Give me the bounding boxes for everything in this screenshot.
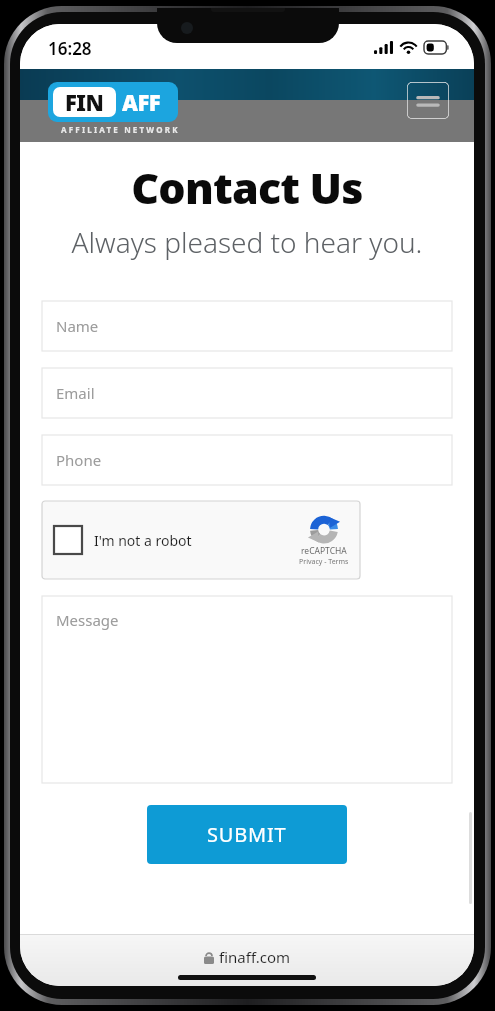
staticText: reCAPTCHA: [301, 545, 347, 557]
staticText: finaff.com: [219, 947, 291, 967]
button[interactable]: Message: [42, 596, 452, 783]
staticText: I'm not a robot: [94, 531, 192, 550]
staticText: Always pleased to hear you.: [44, 223, 450, 261]
staticText: Email: [56, 383, 95, 403]
staticText: Message: [56, 610, 119, 630]
button[interactable]: I'm not a robot checkbox: [54, 526, 82, 554]
button[interactable]: Email: [42, 368, 452, 418]
staticText: 16:28: [48, 37, 92, 60]
staticText: Phone: [56, 450, 102, 470]
staticText: SUBMIT: [207, 821, 287, 848]
staticText: Name: [56, 316, 99, 336]
button[interactable]: Open navigation menu: [407, 82, 449, 119]
staticText: AFF: [122, 87, 161, 117]
staticText: FIN: [65, 87, 104, 117]
button[interactable]: Phone: [42, 435, 452, 485]
staticText: Contact Us: [20, 158, 474, 217]
button[interactable]: SUBMIT: [147, 805, 347, 864]
staticText: AFFILIATE NETWORK: [61, 124, 180, 135]
button[interactable]: FIN AFF Affiliate Network home: [48, 82, 178, 122]
button[interactable]: I'm not a robot checkbox: [42, 501, 360, 579]
staticText: Privacy - Terms: [299, 557, 349, 567]
button[interactable]: finaff.com: [204, 947, 291, 967]
button[interactable]: Name: [42, 301, 452, 351]
